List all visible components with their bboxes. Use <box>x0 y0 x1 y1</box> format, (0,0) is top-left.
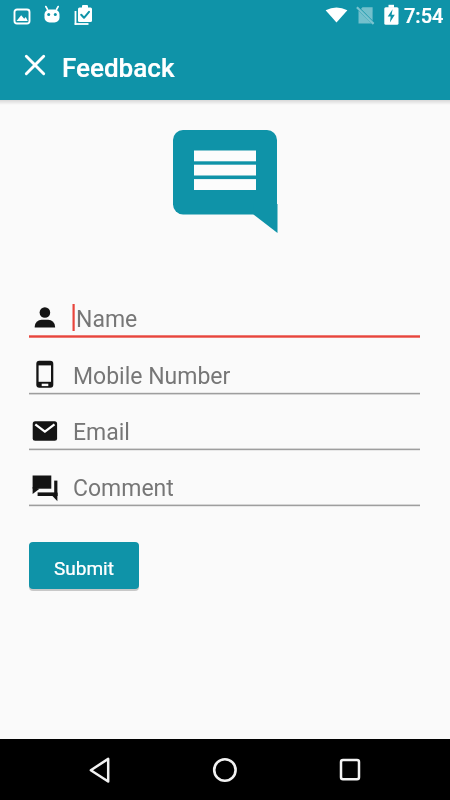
staticText: 7:54 <box>404 4 444 27</box>
button[interactable]: Mobile Number <box>29 356 420 396</box>
button[interactable] <box>76 746 124 794</box>
staticText: Feedback <box>62 53 175 83</box>
button[interactable]: Name <box>29 299 420 339</box>
button[interactable]: Comment <box>29 468 420 508</box>
button[interactable] <box>19 49 51 81</box>
staticText: Submit <box>54 557 114 579</box>
staticText: Mobile Number <box>73 363 231 390</box>
button[interactable]: Submit <box>29 542 139 589</box>
staticText: Comment <box>73 475 174 502</box>
staticText: Name <box>76 306 138 333</box>
button[interactable] <box>201 746 249 794</box>
button[interactable]: Email <box>29 412 420 452</box>
staticText: Email <box>73 419 130 446</box>
button[interactable] <box>326 746 374 794</box>
